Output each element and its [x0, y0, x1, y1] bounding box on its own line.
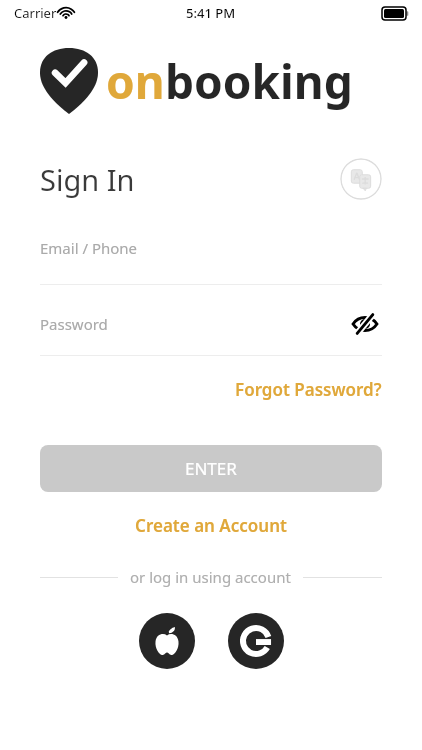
staticText: Carrier [14, 4, 57, 22]
staticText: Password [40, 314, 108, 334]
staticText: ENTER [185, 457, 237, 480]
staticText: Sign In [40, 160, 135, 199]
button[interactable]: Change language [340, 158, 382, 200]
staticText: 5:41 PM [186, 4, 236, 22]
button[interactable]: Sign in with Apple [139, 613, 195, 669]
staticText: or log in using account [130, 567, 291, 587]
button[interactable]: Create an Account [123, 508, 299, 543]
staticText: Email / Phone [40, 238, 138, 258]
button[interactable]: Show password [348, 307, 382, 341]
button[interactable]: Forgot Password? [235, 374, 382, 405]
staticText: on [106, 50, 165, 113]
button[interactable]: Email / Phone [40, 238, 382, 285]
button[interactable]: ENTER [40, 445, 382, 492]
staticText: booking [165, 50, 353, 113]
button[interactable]: Password [40, 314, 348, 334]
button[interactable]: Sign in with Google [228, 613, 284, 669]
staticText: Create an Account [135, 514, 287, 537]
staticText: Forgot Password? [235, 378, 382, 401]
